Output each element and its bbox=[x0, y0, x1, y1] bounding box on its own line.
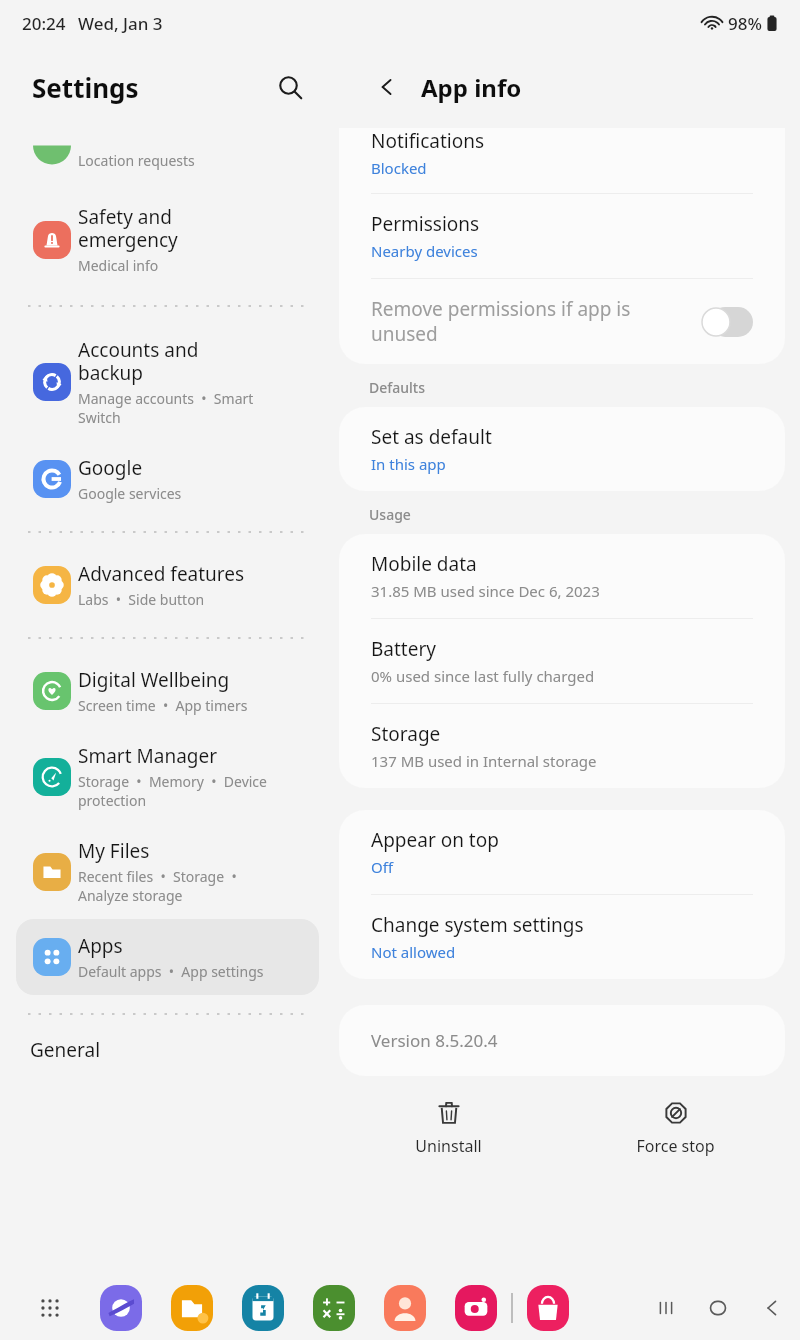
button[interactable]: Storage bbox=[339, 704, 785, 788]
staticText: Notifications bbox=[371, 128, 485, 154]
staticText: Google bbox=[78, 455, 143, 481]
button[interactable]: My Files bbox=[16, 824, 319, 919]
staticText: Smart Manager bbox=[78, 743, 218, 769]
staticText: Battery bbox=[371, 636, 436, 662]
button[interactable]: Safety and emergency bbox=[16, 190, 319, 289]
staticText: Wed, Jan 3 bbox=[78, 12, 163, 35]
button[interactable]: Remove permissions if app is unused bbox=[339, 279, 785, 364]
staticText: Remove permissions if app is unused bbox=[371, 296, 631, 347]
staticText: Accounts and backup bbox=[78, 337, 199, 386]
staticText: Recent files • Storage • Analyze storage bbox=[78, 867, 237, 905]
button[interactable]: Apps bbox=[16, 919, 319, 995]
button[interactable]: Google bbox=[16, 441, 319, 517]
staticText: Set as default bbox=[371, 424, 492, 450]
button[interactable]: Force stop bbox=[562, 1094, 789, 1163]
staticText: 0% used since last fully charged bbox=[371, 666, 595, 686]
staticText: Mobile data bbox=[371, 551, 477, 577]
button[interactable]: Accounts and backup bbox=[16, 323, 319, 441]
staticText: Advanced features bbox=[78, 561, 245, 587]
staticText: Nearby devices bbox=[371, 241, 478, 261]
staticText: Labs • Side button bbox=[78, 590, 205, 609]
staticText: 137 MB used in Internal storage bbox=[371, 751, 597, 771]
button[interactable]: Recents bbox=[640, 1298, 692, 1318]
staticText: Change system settings bbox=[371, 912, 584, 938]
button[interactable]: Change system settings bbox=[339, 895, 785, 979]
staticText: General bbox=[30, 1037, 101, 1063]
staticText: 31.85 MB used since Dec 6, 2023 bbox=[371, 581, 600, 601]
button[interactable]: Search bbox=[267, 64, 313, 110]
button[interactable]: Contacts bbox=[384, 1285, 426, 1331]
button[interactable]: Home bbox=[692, 1297, 744, 1319]
staticText: Off bbox=[371, 857, 394, 877]
button[interactable]: Internet bbox=[100, 1285, 142, 1331]
staticText: Blocked bbox=[371, 158, 427, 178]
staticText: 20:24 bbox=[22, 12, 66, 35]
button[interactable]: Appear on top bbox=[339, 810, 785, 895]
staticText: Force stop bbox=[636, 1135, 715, 1157]
button[interactable]: Mobile data bbox=[339, 534, 785, 619]
button[interactable]: Calculator bbox=[313, 1285, 355, 1331]
staticText: Not allowed bbox=[371, 942, 456, 962]
staticText: Storage bbox=[371, 721, 441, 747]
button[interactable]: Advanced features bbox=[16, 547, 319, 623]
staticText: App info bbox=[421, 71, 522, 104]
staticText: Permissions bbox=[371, 211, 480, 237]
staticText: Google services bbox=[78, 484, 182, 503]
button[interactable]: Digital Wellbeing bbox=[16, 653, 319, 729]
button[interactable]: Permissions bbox=[339, 194, 785, 279]
button[interactable]: Back bbox=[365, 65, 409, 109]
staticText: Safety and emergency bbox=[78, 204, 178, 253]
button[interactable]: Battery bbox=[339, 619, 785, 704]
button[interactable]: Location requests bbox=[26, 128, 309, 170]
button[interactable]: Back bbox=[744, 1297, 800, 1319]
staticText: Appear on top bbox=[371, 827, 499, 853]
staticText: Screen time • App timers bbox=[78, 696, 248, 715]
staticText: Uninstall bbox=[415, 1135, 482, 1157]
staticText: Defaults bbox=[369, 378, 425, 397]
button[interactable]: Smart Manager bbox=[16, 729, 319, 824]
button[interactable]: Camera bbox=[455, 1285, 497, 1331]
staticText: Manage accounts • Smart Switch bbox=[78, 389, 254, 427]
button[interactable]: Uninstall bbox=[335, 1094, 562, 1163]
staticText: Usage bbox=[369, 505, 411, 524]
button[interactable]: Calendar bbox=[242, 1285, 284, 1331]
staticText: Medical info bbox=[78, 256, 159, 275]
button[interactable]: Notifications bbox=[339, 128, 785, 194]
staticText: In this app bbox=[371, 454, 446, 474]
button[interactable]: Galaxy Store bbox=[527, 1285, 569, 1331]
staticText: Location requests bbox=[78, 151, 195, 170]
button[interactable]: My Files bbox=[171, 1285, 213, 1331]
staticText: Version 8.5.20.4 bbox=[371, 1029, 498, 1052]
staticText: Digital Wellbeing bbox=[78, 667, 230, 693]
staticText: Apps bbox=[78, 933, 123, 959]
staticText: Settings bbox=[32, 70, 139, 105]
staticText: Storage • Memory • Device protection bbox=[78, 772, 267, 810]
other: Wi-Fi bbox=[701, 14, 723, 32]
staticText: Default apps • App settings bbox=[78, 962, 264, 981]
other: Battery bbox=[766, 13, 778, 33]
staticText: My Files bbox=[78, 838, 150, 864]
button[interactable]: Set as default bbox=[339, 407, 785, 491]
staticText: 98% bbox=[728, 12, 762, 35]
button[interactable]: Apps list bbox=[0, 1297, 100, 1319]
